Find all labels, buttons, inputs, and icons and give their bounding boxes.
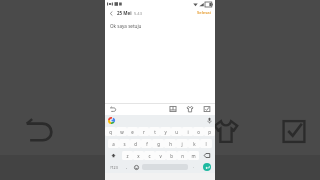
button[interactable]: Shift [106, 150, 121, 161]
button[interactable]: Checklist [203, 105, 211, 113]
button[interactable]: h [164, 139, 176, 148]
button[interactable]: , [122, 162, 131, 172]
staticText: p [208, 129, 211, 135]
staticText: t [154, 129, 156, 135]
button[interactable]: j [176, 139, 188, 148]
staticText: a [112, 141, 115, 147]
staticText: d [134, 141, 137, 147]
staticText: , [126, 164, 128, 170]
staticText: 25 Mei [117, 10, 132, 16]
button[interactable]: a [108, 139, 119, 148]
button[interactable]: g [152, 139, 164, 148]
staticText: z [126, 153, 129, 159]
staticText: l [205, 141, 207, 147]
staticText: o [197, 129, 200, 135]
button[interactable]: Ok saya setuju [105, 18, 215, 103]
staticText: g [157, 141, 160, 147]
button[interactable]: q [105, 127, 116, 136]
button[interactable]: Emoji [131, 162, 141, 172]
button[interactable]: Insert image [169, 105, 177, 113]
staticText: u [175, 129, 178, 135]
button[interactable]: l [200, 139, 212, 148]
button[interactable]: e [127, 127, 138, 136]
button[interactable]: f [141, 139, 152, 148]
button[interactable]: Stickers [186, 105, 194, 113]
button[interactable]: m [188, 151, 199, 160]
button[interactable]: s [119, 139, 130, 148]
button[interactable]: Selesai [196, 10, 212, 16]
button[interactable]: b [166, 151, 177, 160]
button[interactable]: i [182, 127, 193, 136]
button[interactable]: x [133, 151, 144, 160]
staticText: w [120, 129, 124, 135]
button[interactable]: ?123 [106, 162, 121, 172]
button[interactable]: z [122, 151, 133, 160]
button[interactable]: Select [281, 118, 307, 144]
staticText: x [137, 153, 140, 159]
button[interactable]: Stickers [212, 118, 240, 144]
staticText: i [187, 129, 189, 135]
staticText: b [170, 153, 173, 159]
button[interactable]: k [188, 139, 200, 148]
button[interactable]: Undo [109, 105, 117, 113]
button[interactable]: c [144, 151, 155, 160]
staticText: y [164, 129, 167, 135]
button[interactable]: d [130, 139, 141, 148]
staticText: f [146, 141, 148, 147]
button[interactable]: Voice input [207, 117, 212, 124]
staticText: m [191, 153, 196, 159]
button[interactable]: o [193, 127, 204, 136]
staticText: k [193, 141, 196, 147]
staticText: c [148, 153, 151, 159]
staticText: ?123 [110, 165, 118, 170]
staticText: r [143, 129, 145, 135]
button[interactable]: Google search [108, 117, 115, 124]
button[interactable]: u [171, 127, 182, 136]
staticText: v [159, 153, 162, 159]
button[interactable]: Back [108, 10, 115, 17]
staticText: Ok saya setuju [110, 23, 142, 29]
staticText: h [169, 141, 172, 147]
staticText: e [131, 129, 134, 135]
staticText: q [109, 129, 112, 135]
button[interactable]: Undo [22, 114, 56, 146]
button[interactable]: t [149, 127, 160, 136]
staticText: s [123, 141, 126, 147]
staticText: . [193, 164, 195, 170]
button[interactable]: w [116, 127, 127, 136]
button[interactable]: r [138, 127, 149, 136]
staticText: Selesai [197, 10, 211, 16]
button[interactable]: y [160, 127, 171, 136]
staticText: n [181, 153, 184, 159]
staticText: j [181, 141, 183, 147]
button[interactable]: v [155, 151, 166, 160]
button[interactable]: Backspace [200, 150, 214, 161]
button[interactable]: n [177, 151, 188, 160]
staticText: 5.43 [134, 11, 142, 16]
button[interactable]: p [204, 127, 215, 136]
button[interactable]: Enter [203, 163, 211, 171]
